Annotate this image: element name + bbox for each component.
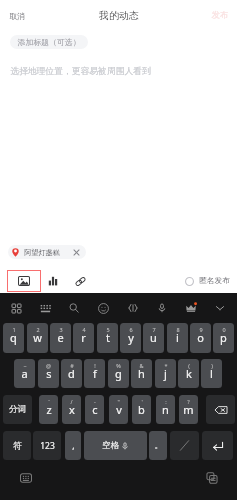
button[interactable]: Search [61,295,87,321]
button[interactable]: & [131,359,152,388]
staticText: ( [188,362,190,369]
staticText: 我的动态 [99,9,139,22]
staticText: q [10,330,17,345]
staticText: ` [48,398,50,405]
staticText: 符 [13,440,22,451]
button[interactable]: 发布 [207,4,233,27]
staticText: ) [211,362,213,369]
staticText: " [117,398,120,405]
staticText: 5 [106,326,110,333]
staticText: y [128,330,134,345]
button[interactable]: - [85,395,104,424]
staticText: & [139,362,144,369]
staticText: : [165,398,167,405]
staticText: - [94,398,96,405]
button[interactable]: Clipboard text [120,295,146,321]
button[interactable]: 阿望灯盏糕 [8,245,86,259]
button[interactable]: " [109,395,128,424]
staticText: v [116,402,122,417]
staticText: ' [141,398,143,405]
button[interactable]: 8 [167,323,188,353]
button[interactable]: Keyboard layout [32,295,58,321]
staticText: a [21,366,28,381]
staticText: 匿名发布 [199,276,230,286]
button[interactable]: ! [84,359,105,388]
staticText: 4 [82,326,86,333]
staticText: * [164,362,168,369]
button[interactable]: Apps [3,295,29,321]
staticText: 阿望灯盏糕 [24,248,60,257]
button[interactable]: Emoji [90,295,116,321]
staticText: 8 [176,326,180,333]
button[interactable]: Hide keyboard [207,295,233,321]
button[interactable]: ) [201,359,222,388]
button[interactable]: ` [39,395,58,424]
staticText: r [81,330,86,345]
button[interactable]: ? [179,395,198,424]
staticText: / [70,398,73,405]
staticText: f [93,366,97,381]
button[interactable]: 3 [50,323,71,353]
staticText: 添加标题（可选） [17,37,81,47]
button[interactable]: 5 [97,323,118,353]
button[interactable]: 符 [3,431,31,460]
staticText: % [116,362,121,369]
button[interactable]: , [65,431,81,460]
staticText: 空格 [102,440,119,451]
staticText: h [138,366,145,381]
button[interactable]: Poll [41,270,65,292]
button[interactable]: Premium [178,295,204,321]
button[interactable]: Switch language [170,431,199,460]
button[interactable]: ' [132,395,151,424]
button[interactable]: 6 [120,323,141,353]
button[interactable]: ( [178,359,199,388]
staticText: o [197,330,204,345]
button[interactable]: 0 [213,323,234,353]
staticText: c [92,402,98,417]
button[interactable]: 匿名发布 [184,273,231,289]
staticText: 123 [40,440,55,452]
button[interactable]: % [108,359,129,388]
staticText: , [72,440,75,452]
button[interactable]: 9 [190,323,211,353]
button[interactable]: 7 [143,323,164,353]
button[interactable]: Clipboard [201,467,223,489]
button[interactable]: Add image [7,270,41,292]
staticText: 取消 [9,11,25,21]
staticText: u [150,330,157,345]
staticText: w [33,330,42,345]
button[interactable]: Voice input [149,295,175,321]
button[interactable]: 4 [73,323,94,353]
button[interactable]: Add link [65,270,95,292]
staticText: t [106,330,110,345]
button[interactable]: Enter [202,431,233,460]
button[interactable]: Backspace [206,395,235,424]
button[interactable]: * [155,359,176,388]
staticText: 分词 [9,404,26,415]
staticText: i [176,330,179,345]
button[interactable]: 1 [3,323,24,353]
button[interactable]: ~ [14,359,35,388]
button[interactable]: 2 [27,323,48,353]
staticText: 。 [154,440,163,451]
staticText: x [69,402,75,417]
staticText: e [57,330,64,345]
staticText: n [162,402,169,417]
button[interactable]: Switch input method [15,467,37,489]
staticText: l [210,366,213,381]
staticText: k [186,366,192,381]
staticText: b [138,402,145,417]
button[interactable]: 空格 [84,431,147,460]
button[interactable]: # [61,359,82,388]
button[interactable]: / [62,395,81,424]
button[interactable]: 123 [33,431,61,460]
staticText: 3 [59,326,63,333]
button[interactable]: 。 [149,431,167,460]
button[interactable]: : [156,395,175,424]
button[interactable]: 取消 [3,5,31,27]
staticText: ~ [23,362,27,369]
button[interactable]: @ [38,359,59,388]
button[interactable]: 分词 [3,395,32,424]
button[interactable]: 添加标题（可选） [10,35,88,49]
staticText: j [164,366,167,381]
